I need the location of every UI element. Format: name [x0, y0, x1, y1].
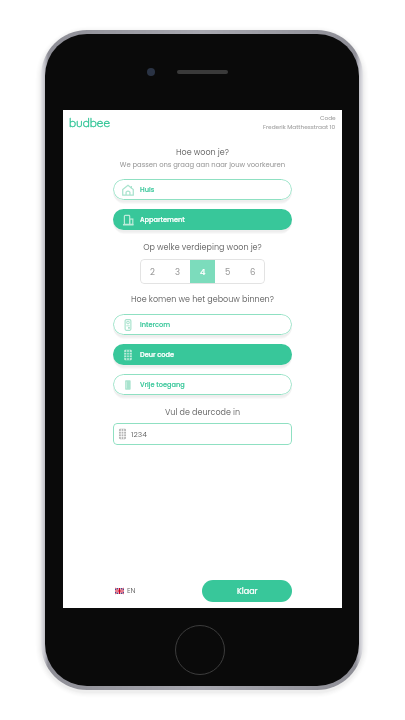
button[interactable]: Apartment [113, 209, 292, 230]
staticText: Huis [140, 185, 155, 194]
button[interactable]: Intercom [113, 314, 292, 335]
staticText: EN [127, 586, 136, 596]
button[interactable]: Keypad [113, 344, 292, 365]
button[interactable]: House [113, 179, 292, 200]
other: Keypad [122, 349, 134, 361]
button[interactable]: 3 [165, 259, 190, 284]
staticText: 4 [200, 266, 206, 278]
staticText: Hoe komen we het gebouw binnen? [113, 294, 292, 305]
staticText: Op welke verdieping woon je? [113, 242, 292, 253]
button[interactable]: 6 [240, 259, 265, 284]
other: Apartment [122, 214, 134, 226]
staticText: Appartement [140, 215, 185, 224]
button[interactable]: EN [113, 584, 138, 598]
button[interactable]: Keypad [113, 423, 292, 445]
button[interactable]: 2 [140, 259, 165, 284]
staticText: Code [320, 114, 336, 122]
staticText: Klaar [237, 586, 258, 597]
staticText: 2 [150, 266, 155, 278]
staticText: Intercom [140, 320, 171, 329]
staticText: We passen ons graag aan naar jouw voorke… [113, 160, 292, 170]
other: Free access [122, 379, 134, 391]
button[interactable]: 4 [190, 259, 215, 284]
button[interactable]: Klaar [202, 580, 292, 602]
other: Intercom [122, 319, 134, 331]
other: Keypad [117, 428, 128, 440]
staticText: 1234 [131, 429, 147, 439]
button[interactable]: Free access [113, 374, 292, 395]
button[interactable]: 5 [215, 259, 240, 284]
staticText: 5 [225, 266, 231, 278]
staticText: 6 [250, 266, 256, 278]
staticText: Vul de deurcode in [113, 407, 292, 418]
staticText: Deur code [140, 350, 174, 359]
staticText: Hoe woon je? [113, 147, 292, 158]
staticText: 3 [175, 266, 181, 278]
staticText: budbee [69, 115, 110, 130]
staticText: Vrije toegang [140, 380, 185, 389]
staticText: Frederik Matthesstraat 10 [263, 123, 336, 131]
other: House [122, 184, 134, 196]
